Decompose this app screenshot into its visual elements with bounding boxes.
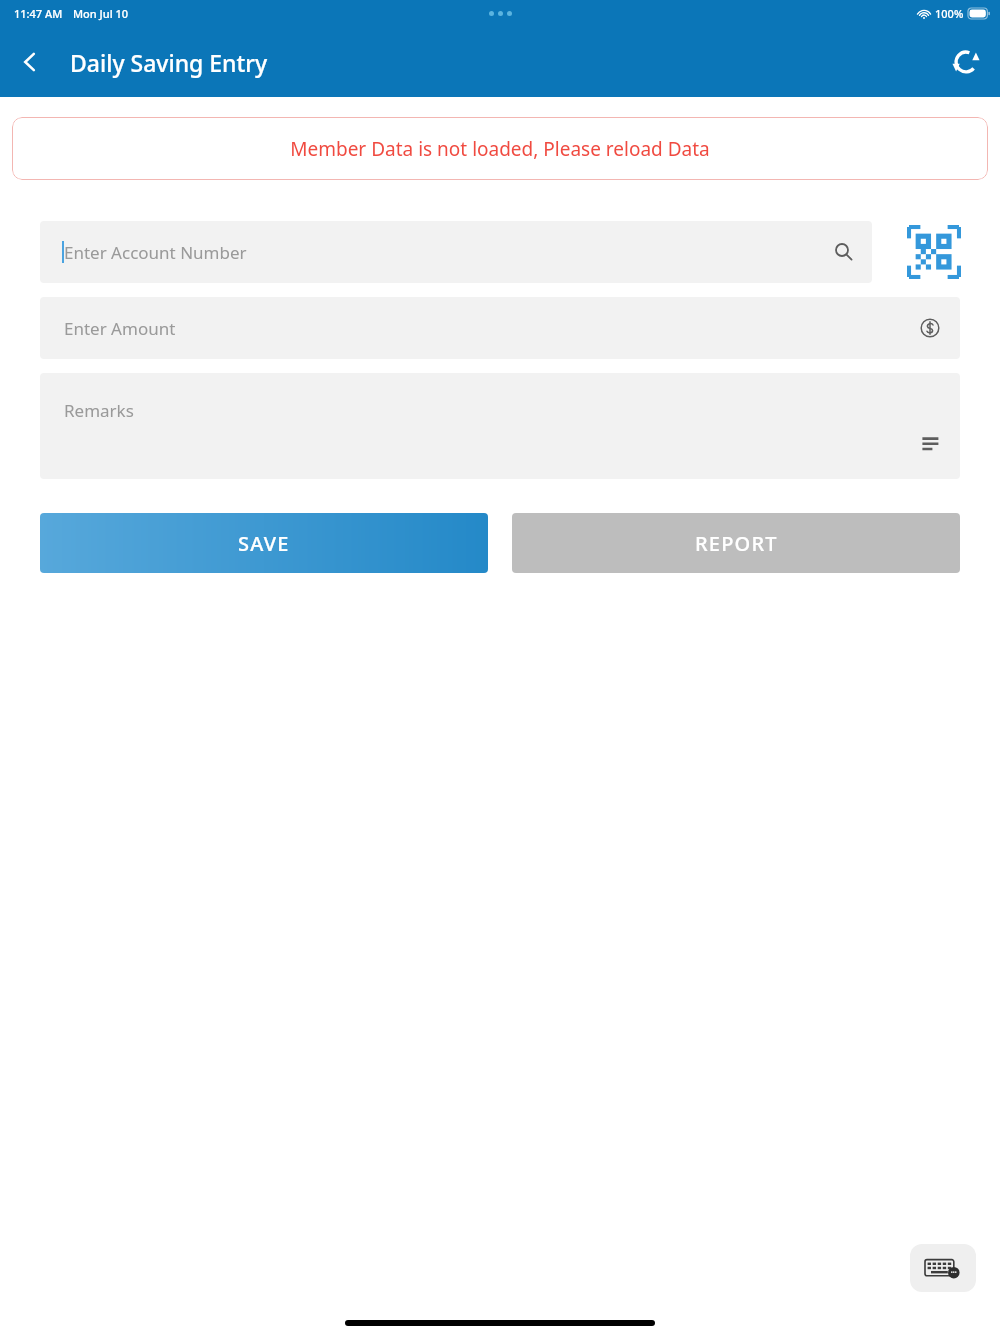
button[interactable]: Enter Account Number [40, 221, 872, 283]
staticText: SAVE [238, 530, 290, 557]
button[interactable]: Show keyboard [910, 1244, 976, 1292]
button[interactable]: Member Data is not loaded, Please reload… [12, 117, 988, 180]
button[interactable]: Enter Amount [40, 297, 960, 359]
button[interactable]: REPORT [512, 513, 960, 573]
staticText: Daily Saving Entry [70, 47, 268, 78]
button[interactable]: Scan QR code [904, 222, 964, 282]
staticText: Remarks [64, 399, 134, 422]
staticText: 11:47 AM [14, 6, 63, 21]
staticText: Member Data is not loaded, Please reload… [290, 136, 710, 162]
staticText: Enter Amount [64, 317, 176, 340]
button[interactable]: SAVE [40, 513, 488, 573]
staticText: Enter Account Number [64, 241, 247, 264]
button[interactable]: Refresh [942, 38, 990, 86]
staticText: REPORT [695, 530, 778, 557]
staticText: 100% [935, 6, 964, 21]
button[interactable]: Back [6, 38, 54, 86]
button[interactable]: Remarks [40, 373, 960, 479]
staticText: Mon Jul 10 [73, 6, 129, 21]
